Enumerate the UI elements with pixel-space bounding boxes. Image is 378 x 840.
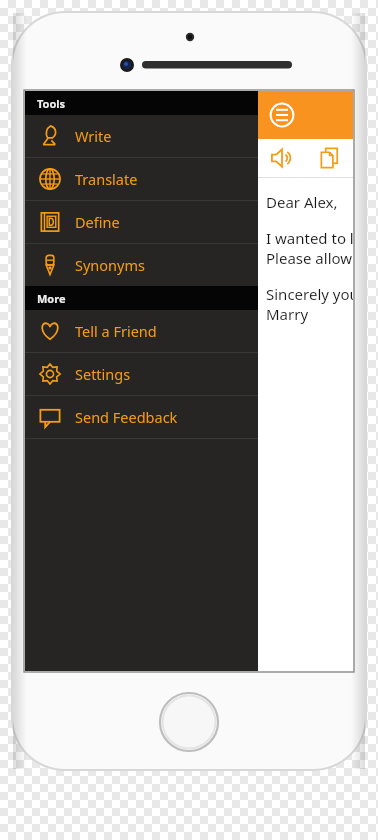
staticText: Please allow me to [266,248,353,268]
staticText: Translate [75,169,138,189]
staticText: Dear Alex, [266,192,338,212]
button[interactable]: Copy [306,139,353,177]
staticText: I wanted to let you [266,228,353,248]
button[interactable]: Send Feedback [25,396,258,438]
staticText: Synonyms [75,255,145,275]
staticText: Settings [75,364,131,384]
staticText: Write [75,126,112,146]
staticText: Define [75,212,120,232]
staticText: Marry [266,304,309,324]
button[interactable]: Settings [25,353,258,395]
button[interactable]: Translate [25,158,258,200]
button[interactable]: Write [25,115,258,157]
staticText: More [37,291,66,306]
button[interactable]: Tell a Friend [25,310,258,352]
staticText: Send Feedback [75,407,178,427]
staticText: Tools [37,96,66,111]
button[interactable]: Menu [268,101,296,129]
button[interactable]: Define [25,201,258,243]
button[interactable]: Synonyms [25,244,258,286]
staticText: Tell a Friend [75,321,157,341]
button[interactable]: Speak [258,139,306,177]
staticText: Sincerely yours, [266,284,353,304]
